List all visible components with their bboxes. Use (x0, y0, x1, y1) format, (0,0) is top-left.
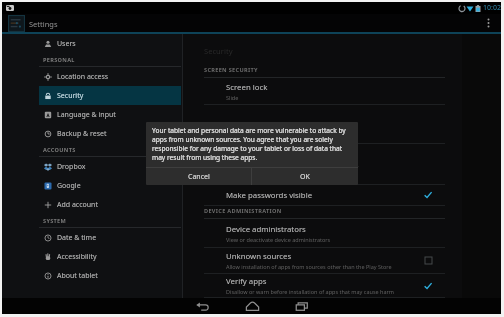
button[interactable]: Recent apps (287, 298, 317, 314)
button[interactable]: Location access (39, 67, 181, 86)
staticText: responsible for any damage to your table… (152, 144, 343, 153)
staticText: 10:02 (483, 3, 501, 13)
staticText: OK (300, 172, 310, 182)
staticText: Allow installation of apps from sources … (226, 263, 392, 270)
staticText: Google (57, 181, 81, 191)
button[interactable]: Make passwords visible (183, 185, 462, 206)
button[interactable]: Settings (8, 15, 58, 32)
staticText: Slide (226, 94, 239, 101)
button[interactable]: Device administrators (183, 219, 462, 248)
staticText: Settings (29, 19, 58, 29)
staticText: DEVICE ADMINISTRATION (204, 207, 282, 215)
button[interactable]: Home (237, 298, 267, 314)
staticText: Encrypt tablet (226, 151, 277, 162)
staticText: PERSONAL (43, 56, 75, 64)
staticText: Backup & reset (57, 129, 107, 139)
other: Screenshot notification (6, 5, 14, 11)
button[interactable]: Security (39, 86, 181, 105)
staticText: Unknown sources (226, 251, 292, 262)
staticText: View or deactivate device administrators (226, 236, 331, 243)
button[interactable]: Users (39, 34, 181, 53)
button[interactable]: Unknown sources (183, 248, 462, 274)
button[interactable]: Back (187, 298, 217, 314)
staticText: SYSTEM (43, 217, 67, 225)
button[interactable]: Google (39, 176, 181, 195)
staticText: About tablet (57, 271, 98, 281)
button[interactable]: OK (252, 168, 358, 185)
button[interactable]: Encrypt tablet (183, 144, 462, 185)
staticText: Disallow or warn before installation of … (226, 288, 395, 295)
staticText: Verify apps (226, 276, 267, 287)
staticText: Security (57, 91, 84, 101)
staticText: Users (57, 39, 76, 49)
button[interactable]: Owner info (183, 105, 462, 144)
button[interactable]: Language & input (39, 105, 181, 124)
staticText: apps from unknown sources. You agree tha… (152, 135, 333, 144)
staticText: SCREEN SECURITY (204, 66, 258, 74)
staticText: Require a numeric PIN or password to dec… (226, 163, 359, 177)
staticText: Date & time (57, 233, 97, 243)
staticText: Security (204, 46, 233, 56)
staticText: may result from using these apps. (152, 153, 258, 162)
staticText: Add account (57, 200, 98, 210)
staticText: Location access (57, 72, 109, 82)
staticText: Cancel (188, 172, 210, 182)
staticText: ACCOUNTS (43, 146, 76, 154)
button[interactable]: Accessibility (39, 247, 181, 266)
staticText: Accessibility (57, 252, 97, 262)
staticText: Your tablet and personal data are more v… (152, 126, 346, 135)
button[interactable]: About tablet (39, 266, 181, 285)
button[interactable]: Cancel (146, 168, 251, 185)
button[interactable]: More options (483, 14, 493, 32)
button[interactable]: Add account (39, 195, 181, 214)
button[interactable]: Dropbox (39, 157, 181, 176)
staticText: Dropbox (57, 162, 86, 172)
button[interactable]: Screen lock (183, 78, 462, 105)
staticText: Screen lock (226, 82, 268, 93)
staticText: Make passwords visible (226, 190, 313, 201)
button[interactable]: Verify apps (183, 274, 462, 298)
button[interactable]: Date & time (39, 228, 181, 247)
button[interactable]: Backup & reset (39, 124, 181, 143)
staticText: Owner info (226, 119, 267, 130)
staticText: Device administrators (226, 224, 306, 235)
staticText: Language & input (57, 110, 116, 120)
